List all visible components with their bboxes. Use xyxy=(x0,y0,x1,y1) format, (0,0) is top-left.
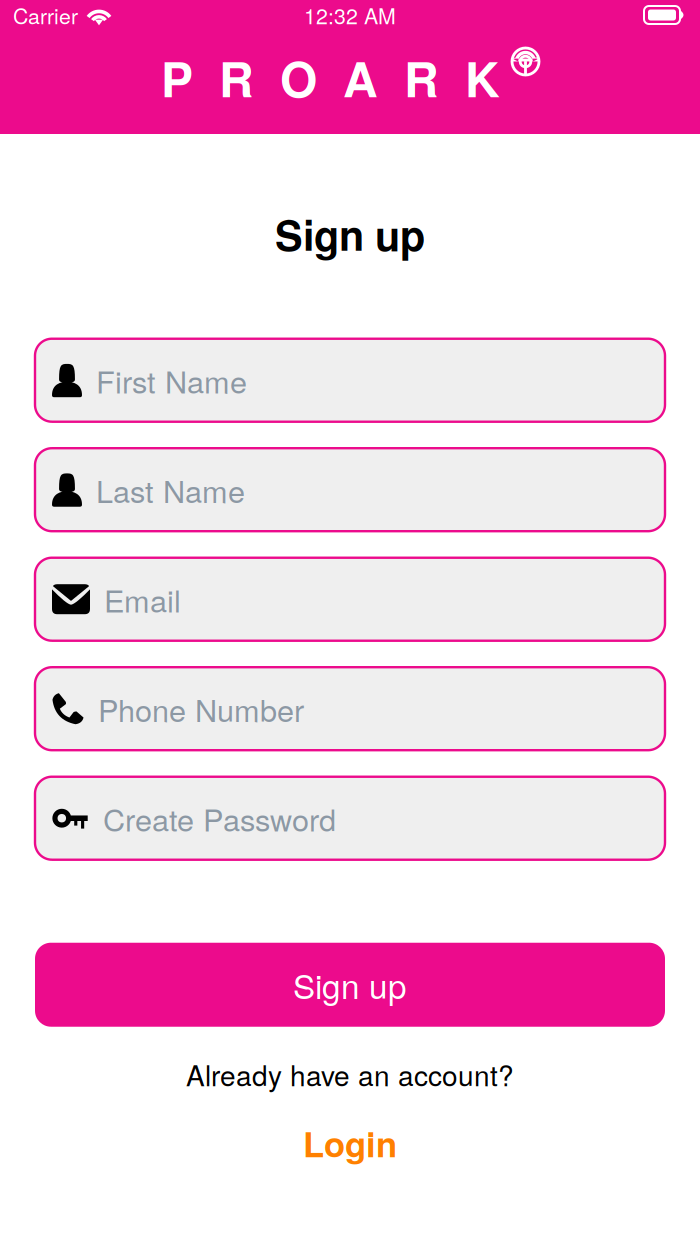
staticText: 12:32 AM xyxy=(304,0,396,30)
button[interactable]: Create Password xyxy=(35,777,665,860)
staticText: K xyxy=(465,44,500,111)
staticText: Login xyxy=(303,1119,397,1167)
button[interactable]: Login xyxy=(289,1111,411,1175)
button[interactable]: Sign up xyxy=(35,943,665,1027)
staticText: Sign up xyxy=(293,961,407,1008)
staticText: A xyxy=(343,44,378,111)
staticText: R xyxy=(404,44,439,111)
staticText: First Name xyxy=(96,359,247,402)
staticText: Already have an account? xyxy=(186,1055,514,1094)
staticText: Carrier xyxy=(13,0,78,30)
button[interactable]: Last Name xyxy=(35,448,665,531)
button[interactable]: Email xyxy=(35,558,665,641)
staticText: Email xyxy=(104,578,181,621)
staticText: R xyxy=(219,44,254,111)
staticText: P xyxy=(161,44,193,111)
button[interactable]: First Name xyxy=(35,339,665,422)
staticText: Sign up xyxy=(275,205,425,263)
button[interactable]: Phone Number xyxy=(35,667,665,750)
staticText: Phone Number xyxy=(98,687,304,730)
staticText: O xyxy=(280,44,317,111)
staticText: Create Password xyxy=(103,797,336,840)
staticText: Last Name xyxy=(96,468,245,511)
